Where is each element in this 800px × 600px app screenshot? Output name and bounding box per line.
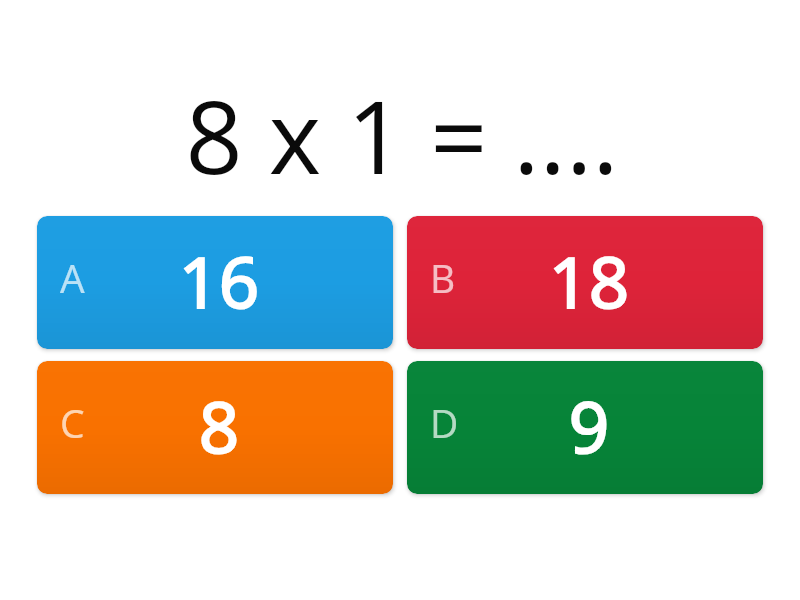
staticText: 18 — [549, 233, 630, 328]
button[interactable]: 8 — [37, 361, 393, 494]
staticText: C — [60, 396, 85, 449]
button[interactable]: 18 — [407, 216, 763, 349]
button[interactable]: 16 — [37, 216, 393, 349]
staticText: 8 x 1 = .... — [2, 67, 800, 203]
staticText: B — [430, 251, 456, 304]
staticText: 9 — [569, 378, 610, 473]
button[interactable]: 9 — [407, 361, 763, 494]
staticText: D — [430, 396, 459, 449]
staticText: 16 — [179, 233, 260, 328]
staticText: 8 — [199, 378, 240, 473]
staticText: A — [60, 251, 85, 304]
